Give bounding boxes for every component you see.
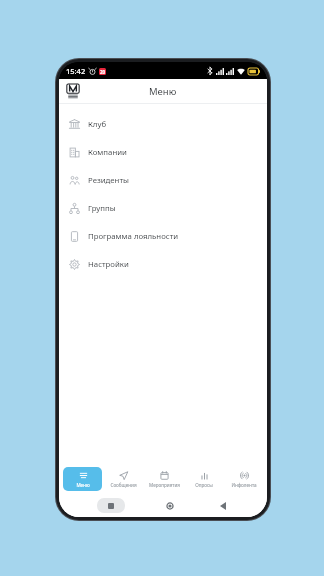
button[interactable]: Мероприятия	[145, 467, 183, 491]
button[interactable]: Home	[162, 498, 177, 513]
staticText: Меню	[76, 482, 90, 488]
button[interactable]: Меню	[63, 467, 102, 491]
button[interactable]: Компании	[59, 138, 267, 166]
button[interactable]: Группы	[59, 194, 267, 222]
staticText: Мероприятия	[149, 482, 180, 488]
staticText: Резиденты	[88, 175, 129, 186]
button[interactable]: Сообщения	[104, 467, 143, 491]
button[interactable]: Back	[215, 498, 230, 513]
staticText: 20	[100, 69, 106, 75]
button[interactable]: Recents	[97, 498, 125, 513]
button[interactable]: Logo	[65, 83, 81, 99]
staticText: Клуб	[88, 119, 107, 130]
staticText: Сообщения	[110, 482, 137, 488]
button[interactable]: Клуб	[59, 110, 267, 138]
button[interactable]: Инфолента	[225, 467, 263, 491]
staticText: 15:42	[66, 66, 86, 76]
staticText: Инфолента	[231, 482, 257, 488]
button[interactable]: Программа лояльности	[59, 222, 267, 250]
staticText: Компании	[88, 147, 127, 158]
staticText: Настройки	[88, 259, 129, 270]
button[interactable]: Резиденты	[59, 166, 267, 194]
staticText: Группы	[88, 203, 116, 214]
staticText: Меню	[149, 85, 177, 98]
button[interactable]: Опросы	[185, 467, 223, 491]
button[interactable]: Настройки	[59, 250, 267, 278]
staticText: Опросы	[195, 482, 213, 488]
staticText: Программа лояльности	[88, 231, 179, 242]
